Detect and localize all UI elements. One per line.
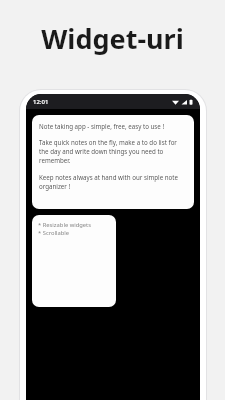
staticText: Keep notes always at hand with our simpl… (39, 173, 187, 191)
staticText: Widget-uri (41, 20, 184, 57)
staticText: Take quick notes on the fly, make a to d… (39, 138, 187, 165)
staticText: * Scrollable (38, 229, 70, 237)
staticText: 12:01 (33, 98, 49, 106)
button[interactable]: Note taking app - simple, free, easy to … (32, 115, 194, 209)
staticText: Note taking app - simple, free, easy to … (39, 122, 165, 130)
staticText: * Resizable widgets (38, 221, 91, 229)
button[interactable]: * Resizable widgets (32, 215, 116, 307)
